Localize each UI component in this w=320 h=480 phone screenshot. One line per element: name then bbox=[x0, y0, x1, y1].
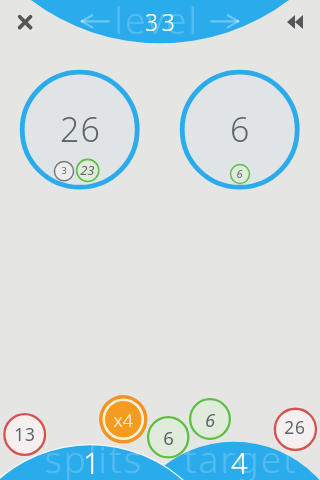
button[interactable]: Close bbox=[6, 4, 42, 40]
button[interactable]: Next level bbox=[204, 4, 248, 40]
button[interactable]: Previous level bbox=[72, 4, 116, 40]
button[interactable]: Restart level bbox=[278, 4, 314, 40]
